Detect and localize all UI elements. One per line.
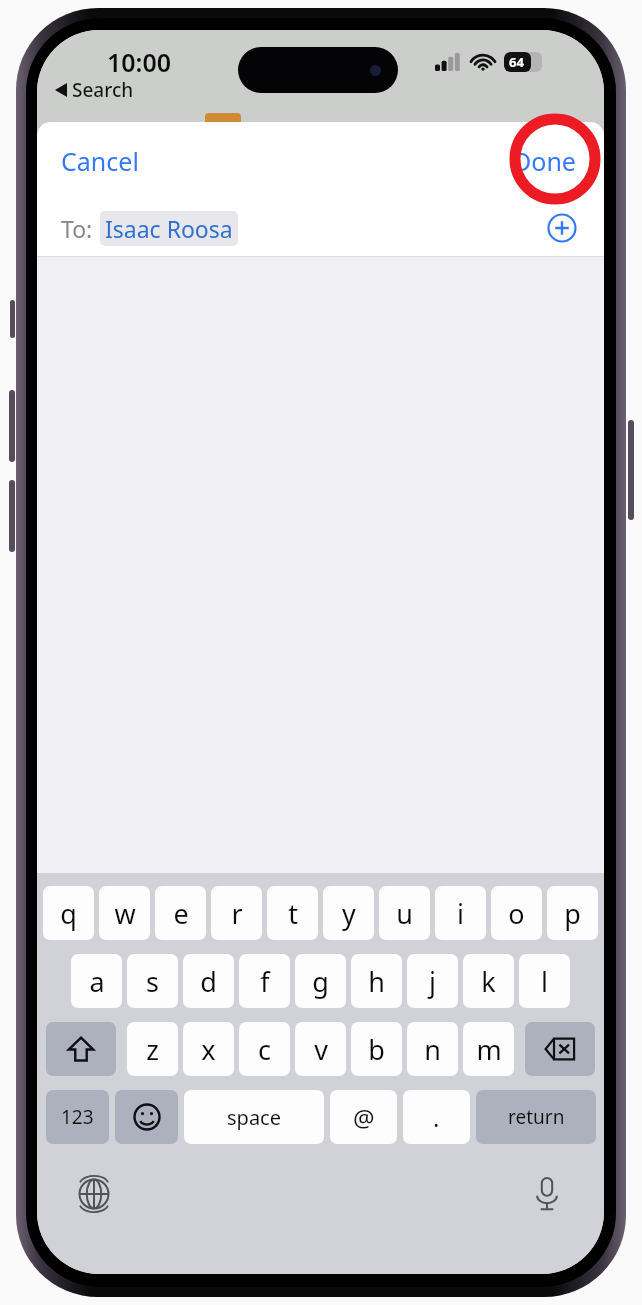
staticText: . xyxy=(433,1101,440,1134)
staticText: k xyxy=(481,963,496,1000)
staticText: a xyxy=(89,963,105,1000)
button[interactable]: n xyxy=(407,1022,458,1076)
button[interactable]: w xyxy=(99,886,150,940)
staticText: z xyxy=(146,1031,159,1068)
button[interactable]: q xyxy=(43,886,94,940)
button[interactable]: a xyxy=(71,954,122,1008)
button[interactable]: @ xyxy=(330,1090,397,1144)
button[interactable]: k xyxy=(463,954,514,1008)
staticText: w xyxy=(114,895,136,932)
staticText: Search xyxy=(72,77,134,103)
staticText: i xyxy=(457,895,464,932)
button[interactable]: Emoji xyxy=(115,1090,178,1144)
button[interactable]: Done xyxy=(501,136,588,186)
button[interactable]: v xyxy=(295,1022,346,1076)
staticText: @ xyxy=(353,1101,375,1134)
button[interactable]: l xyxy=(519,954,570,1008)
button[interactable]: Change keyboard xyxy=(70,1170,118,1218)
button[interactable]: g xyxy=(295,954,346,1008)
button[interactable]: space xyxy=(184,1090,324,1144)
staticText: u xyxy=(396,895,413,932)
button[interactable]: u xyxy=(379,886,430,940)
staticText: Cancel xyxy=(61,144,139,178)
staticText: f xyxy=(260,963,270,1000)
button[interactable]: Backspace xyxy=(525,1022,595,1076)
button[interactable]: t xyxy=(267,886,318,940)
button[interactable]: x xyxy=(183,1022,234,1076)
staticText: 10:00 xyxy=(107,45,172,79)
button[interactable]: Shift xyxy=(46,1022,116,1076)
button[interactable]: i xyxy=(435,886,486,940)
staticText: y xyxy=(342,895,356,932)
button[interactable]: c xyxy=(239,1022,290,1076)
button[interactable]: d xyxy=(183,954,234,1008)
button[interactable]: Dictation xyxy=(523,1170,571,1218)
button[interactable]: h xyxy=(351,954,402,1008)
button[interactable]: y xyxy=(323,886,374,940)
button[interactable]: 123 xyxy=(46,1090,109,1144)
staticText: g xyxy=(312,963,329,1000)
button[interactable]: return xyxy=(476,1090,596,1144)
staticText: l xyxy=(541,963,548,1000)
staticText: p xyxy=(564,895,581,932)
staticText: b xyxy=(368,1031,385,1068)
staticText: space xyxy=(227,1104,281,1131)
button[interactable]: r xyxy=(211,886,262,940)
staticText: 64 xyxy=(509,53,524,71)
button[interactable]: Cancel xyxy=(47,136,153,186)
button[interactable]: . xyxy=(403,1090,470,1144)
button[interactable]: b xyxy=(351,1022,402,1076)
button[interactable]: Isaac Roosa xyxy=(100,211,238,246)
staticText: Done xyxy=(513,144,576,178)
button[interactable]: z xyxy=(127,1022,178,1076)
staticText: To: xyxy=(61,213,93,244)
staticText: 123 xyxy=(61,1104,94,1130)
button[interactable]: m xyxy=(463,1022,514,1076)
button[interactable]: p xyxy=(547,886,598,940)
staticText: r xyxy=(231,895,243,932)
staticText: c xyxy=(258,1031,271,1068)
button[interactable]: s xyxy=(127,954,178,1008)
staticText: Isaac Roosa xyxy=(105,213,233,244)
staticText: x xyxy=(201,1031,216,1068)
staticText: e xyxy=(173,895,189,932)
staticText: v xyxy=(314,1031,328,1068)
staticText: return xyxy=(508,1104,565,1130)
button[interactable]: e xyxy=(155,886,206,940)
staticText: o xyxy=(508,895,525,932)
button[interactable]: Search xyxy=(55,77,134,103)
staticText: h xyxy=(368,963,385,1000)
staticText: q xyxy=(60,895,77,932)
button[interactable]: j xyxy=(407,954,458,1008)
button[interactable]: f xyxy=(239,954,290,1008)
staticText: d xyxy=(200,963,217,1000)
staticText: j xyxy=(429,963,436,1000)
button[interactable]: o xyxy=(491,886,542,940)
staticText: t xyxy=(288,895,298,932)
staticText: s xyxy=(146,963,159,1000)
button[interactable]: Add contact xyxy=(540,206,584,250)
staticText: n xyxy=(424,1031,441,1068)
staticText: m xyxy=(476,1031,502,1068)
